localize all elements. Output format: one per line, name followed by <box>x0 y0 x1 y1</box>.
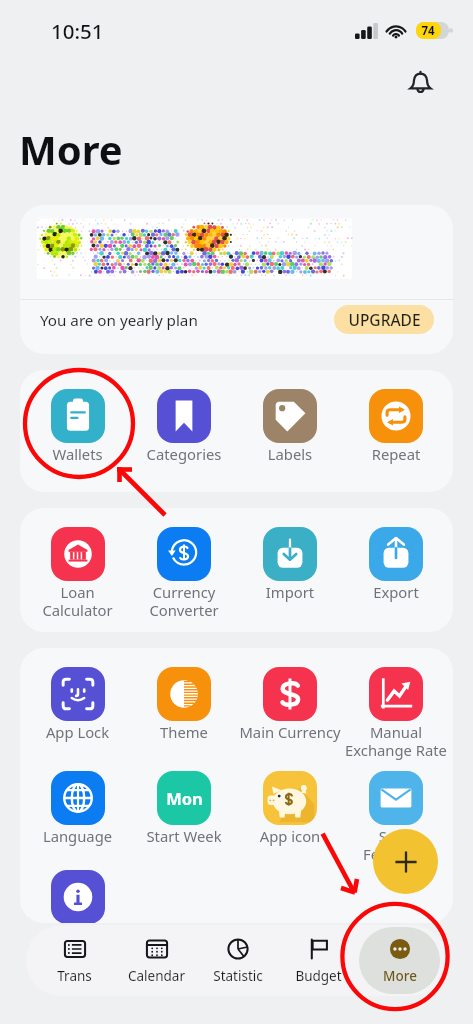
button[interactable]: Budget <box>278 927 359 994</box>
staticText: Repeat <box>343 444 449 464</box>
button[interactable]: Currency Converter <box>131 527 237 620</box>
button[interactable]: Labels <box>237 389 343 464</box>
staticText: Calendar <box>128 967 185 985</box>
staticText: Labels <box>237 444 343 464</box>
staticText: More <box>383 967 417 985</box>
staticText: Wallets <box>24 444 131 464</box>
button[interactable]: Main Currency <box>237 667 343 742</box>
button[interactable]: App icon <box>237 771 343 846</box>
staticText: Main Currency <box>237 722 343 742</box>
staticText: Currency Converter <box>131 582 237 620</box>
staticText: You are on yearly plan <box>40 310 198 331</box>
staticText: Send Feedback <box>343 826 449 864</box>
staticText: Manual Exchange Rate <box>343 722 449 760</box>
staticText: Export <box>343 582 449 602</box>
button[interactable]: Manual Exchange Rate <box>343 667 449 760</box>
staticText: App Lock <box>24 722 131 742</box>
button[interactable]: Mon <box>131 771 237 846</box>
button[interactable]: You are on yearly plan <box>20 205 453 354</box>
button[interactable]: More <box>359 927 440 994</box>
button[interactable]: App Lock <box>24 667 131 742</box>
button[interactable]: UPGRADE <box>334 305 434 334</box>
staticText: Budget <box>295 967 342 985</box>
staticText: App icon <box>237 826 343 846</box>
button[interactable]: Send Feedback <box>343 771 449 864</box>
staticText: UPGRADE <box>348 309 421 330</box>
staticText: Theme <box>131 722 237 742</box>
staticText: Import <box>237 582 343 602</box>
button[interactable]: Loan Calculator <box>24 527 131 620</box>
staticText: 10:51 <box>51 17 104 45</box>
button[interactable]: Repeat <box>343 389 449 464</box>
button[interactable]: Wallets <box>24 389 131 464</box>
button[interactable]: About <box>24 870 131 923</box>
staticText: More <box>19 122 123 176</box>
button[interactable]: Categories <box>131 389 237 464</box>
staticText: Language <box>24 826 131 846</box>
button[interactable]: Theme <box>131 667 237 742</box>
staticText: Trans <box>57 967 92 985</box>
button[interactable]: Language <box>24 771 131 846</box>
button[interactable]: Add <box>373 829 438 894</box>
button[interactable]: Export <box>343 527 449 602</box>
staticText: Statistic <box>213 967 263 985</box>
staticText: Loan Calculator <box>24 582 131 620</box>
button[interactable]: Import <box>237 527 343 602</box>
button[interactable]: Calendar <box>115 927 197 994</box>
button[interactable]: Notifications <box>400 62 440 102</box>
button[interactable]: Trans <box>33 927 115 994</box>
staticText: Start Week <box>131 826 237 846</box>
staticText: Mon <box>166 787 203 809</box>
button[interactable]: Statistic <box>197 927 278 994</box>
staticText: 74 <box>421 23 435 39</box>
staticText: Categories <box>131 444 237 464</box>
